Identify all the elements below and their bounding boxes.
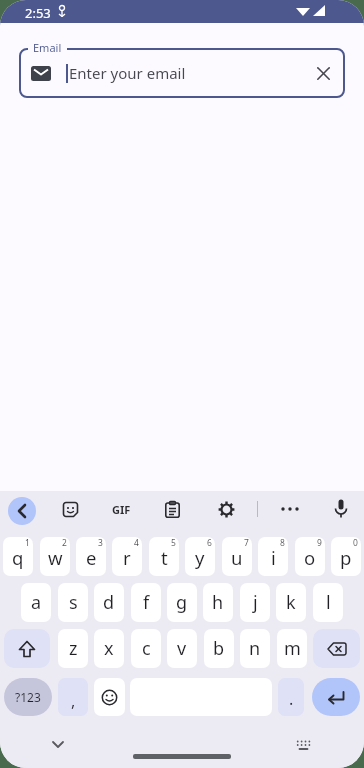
staticText: 6 (207, 537, 212, 549)
staticText: c (142, 636, 151, 661)
staticText: j (253, 590, 258, 615)
staticText: m (284, 636, 301, 661)
button[interactable] (8, 497, 36, 525)
button[interactable]: o (295, 537, 325, 576)
button[interactable]: b (204, 629, 234, 668)
staticText: Enter your email (69, 63, 186, 83)
staticText: o (304, 545, 316, 570)
staticText: d (103, 590, 115, 615)
staticText: g (176, 590, 188, 615)
staticText: w (48, 545, 63, 570)
button[interactable] (218, 501, 235, 518)
button[interactable] (334, 499, 348, 519)
button[interactable]: f (131, 583, 161, 622)
button[interactable]: j (240, 583, 270, 622)
button[interactable] (281, 507, 299, 511)
staticText: y (195, 545, 205, 570)
staticText: . (289, 688, 294, 710)
button[interactable]: g (167, 583, 197, 622)
button[interactable] (312, 678, 360, 716)
button[interactable]: i (258, 537, 288, 576)
button[interactable]: m (277, 629, 307, 668)
staticText: 7 (244, 537, 249, 549)
button[interactable]: k (276, 583, 306, 622)
button[interactable]: l (313, 583, 343, 622)
staticText: a (31, 590, 42, 615)
button[interactable] (317, 67, 330, 80)
staticText: 1 (25, 537, 30, 549)
button[interactable] (296, 740, 311, 751)
staticText: x (104, 636, 114, 661)
staticText: 2 (62, 537, 67, 549)
button[interactable]: s (58, 583, 88, 622)
button[interactable] (62, 501, 79, 518)
staticText: , (71, 690, 76, 712)
button[interactable] (4, 629, 50, 668)
staticText: n (249, 636, 261, 661)
staticText: p (340, 545, 352, 570)
button[interactable]: e (76, 537, 106, 576)
staticText: Email (33, 40, 62, 55)
staticText: 9 (317, 537, 322, 549)
staticText: u (231, 545, 243, 570)
staticText: b (213, 636, 225, 661)
button[interactable] (52, 741, 64, 748)
button[interactable]: p (331, 537, 361, 576)
button[interactable] (165, 501, 180, 518)
button[interactable]: u (222, 537, 252, 576)
button[interactable]: q (3, 537, 33, 576)
button[interactable]: r (112, 537, 142, 576)
staticText: e (86, 545, 97, 570)
button[interactable]: d (94, 583, 124, 622)
button[interactable]: GIF (112, 502, 131, 517)
button[interactable]: v (167, 629, 197, 668)
staticText: 2:53 (25, 4, 51, 22)
button[interactable]: h (203, 583, 233, 622)
button[interactable]: Enter your email (19, 48, 345, 98)
staticText: s (69, 590, 78, 615)
button[interactable]: . (278, 678, 304, 716)
staticText: i (271, 545, 276, 570)
staticText: k (286, 590, 296, 615)
staticText: 5 (171, 537, 176, 549)
staticText: v (177, 636, 187, 661)
button[interactable]: ?123 (4, 678, 52, 716)
button[interactable] (313, 629, 360, 668)
staticText: ?123 (15, 689, 41, 705)
button[interactable]: c (131, 629, 161, 668)
button[interactable]: t (149, 537, 179, 576)
staticText: h (212, 590, 224, 615)
staticText: 3 (98, 537, 103, 549)
staticText: r (123, 545, 131, 570)
staticText: l (326, 590, 331, 615)
staticText: q (12, 545, 24, 570)
staticText: f (143, 590, 150, 615)
staticText: 4 (134, 537, 139, 549)
staticText: 8 (280, 537, 285, 549)
button[interactable]: z (58, 629, 88, 668)
button[interactable]: n (240, 629, 270, 668)
button[interactable]: w (40, 537, 70, 576)
staticText: z (69, 636, 78, 661)
staticText: 0 (353, 537, 358, 549)
button[interactable] (94, 678, 125, 716)
staticText: t (161, 545, 168, 570)
button[interactable]: y (185, 537, 215, 576)
button[interactable]: x (94, 629, 124, 668)
button[interactable]: , (58, 678, 88, 716)
button[interactable]: a (21, 583, 51, 622)
